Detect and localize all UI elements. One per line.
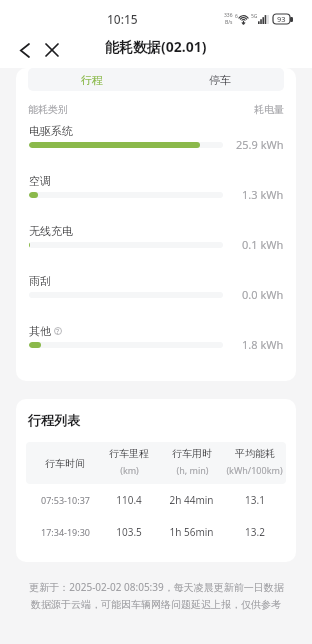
staticText: 其他 [29,324,51,338]
button[interactable]: 07:53-10:37 [33,484,286,516]
button[interactable]: 停车 [156,68,284,91]
staticText: 93 [277,14,286,24]
staticText: 13.2 [245,525,265,539]
staticText: 1.3 kWh [242,187,284,202]
staticText: 更新于：2025-02-02 08:05:39，每天凌晨更新前一日数据 [29,580,284,594]
staticText: 行车用时 [172,447,212,460]
staticText: (h, min) [176,464,209,476]
staticText: 110.4 [116,493,142,507]
staticText: 无线充电 [29,224,73,238]
staticText: 07:53-10:37 [41,494,90,506]
staticText: 电驱系统 [29,124,73,138]
staticText: 能耗类别 [28,103,68,116]
staticText: (km) [120,464,139,476]
button[interactable]: Back [10,36,38,64]
staticText: 25.9 kWh [236,137,284,152]
staticText: 空调 [29,174,51,188]
staticText: 数据源于云端，可能因车辆网络问题延迟上报，仅供参考 [31,598,281,611]
button[interactable]: 行程 [28,68,156,91]
staticText: 10:15 [107,11,138,27]
staticText: 耗电量 [254,103,284,116]
staticText: 0.1 kWh [242,237,284,252]
staticText: 5G [251,13,258,20]
staticText: 1.8 kWh [242,337,284,352]
button[interactable]: 17:34-19:30 [33,516,286,548]
staticText: B/s [225,19,233,26]
staticText: 行程列表 [28,412,80,428]
staticText: 行程 [81,73,103,87]
staticText: 17:34-19:30 [41,526,90,538]
staticText: 平均能耗 [235,447,275,460]
staticText: 能耗数据(02.01) [105,37,207,56]
staticText: 13.1 [245,493,265,507]
staticText: 行车里程 [109,447,149,460]
button[interactable]: Close [38,36,66,64]
staticText: ? [56,327,60,335]
staticText: 6 [235,13,238,20]
staticText: 雨刮 [29,274,51,288]
staticText: 0.0 kWh [242,287,284,302]
staticText: 1h 56min [169,525,214,539]
staticText: 336 [224,12,233,19]
staticText: 停车 [209,73,231,87]
staticText: 2h 44min [169,493,214,507]
staticText: (kWh/100km) [226,464,283,476]
staticText: 103.5 [116,525,142,539]
staticText: 行车时间 [45,457,85,470]
